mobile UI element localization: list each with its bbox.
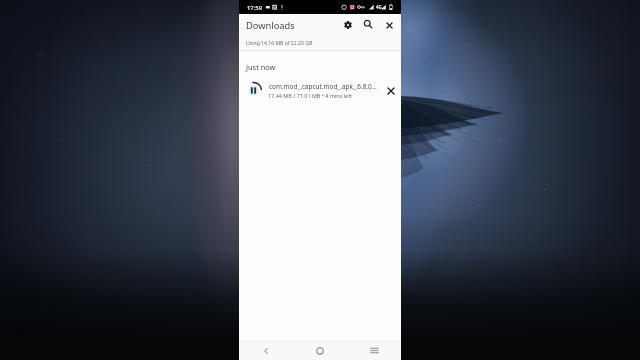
button[interactable]: Close [377,13,401,37]
button[interactable]: Home [293,341,347,360]
staticText: 17.44 MB / 71.01 MB • 4 mins left [268,92,352,99]
button[interactable]: Settings [336,13,360,37]
staticText: Just now [246,62,276,72]
button[interactable]: Recent apps [347,341,401,360]
staticText: Downloads [246,19,295,32]
button[interactable]: Search [356,12,380,36]
staticText: Using 14.16 MB of 22.20 GB [246,40,313,47]
button[interactable]: Back [239,341,293,360]
staticText: 4G [376,4,382,10]
staticText: 17:59 [247,4,263,12]
button[interactable]: Cancel download [379,79,403,103]
button[interactable]: com.mod_.capcut.mod_.apk_.6.8.0… [239,78,401,104]
staticText: com.mod_.capcut.mod_.apk_.6.8.0… [269,82,381,91]
